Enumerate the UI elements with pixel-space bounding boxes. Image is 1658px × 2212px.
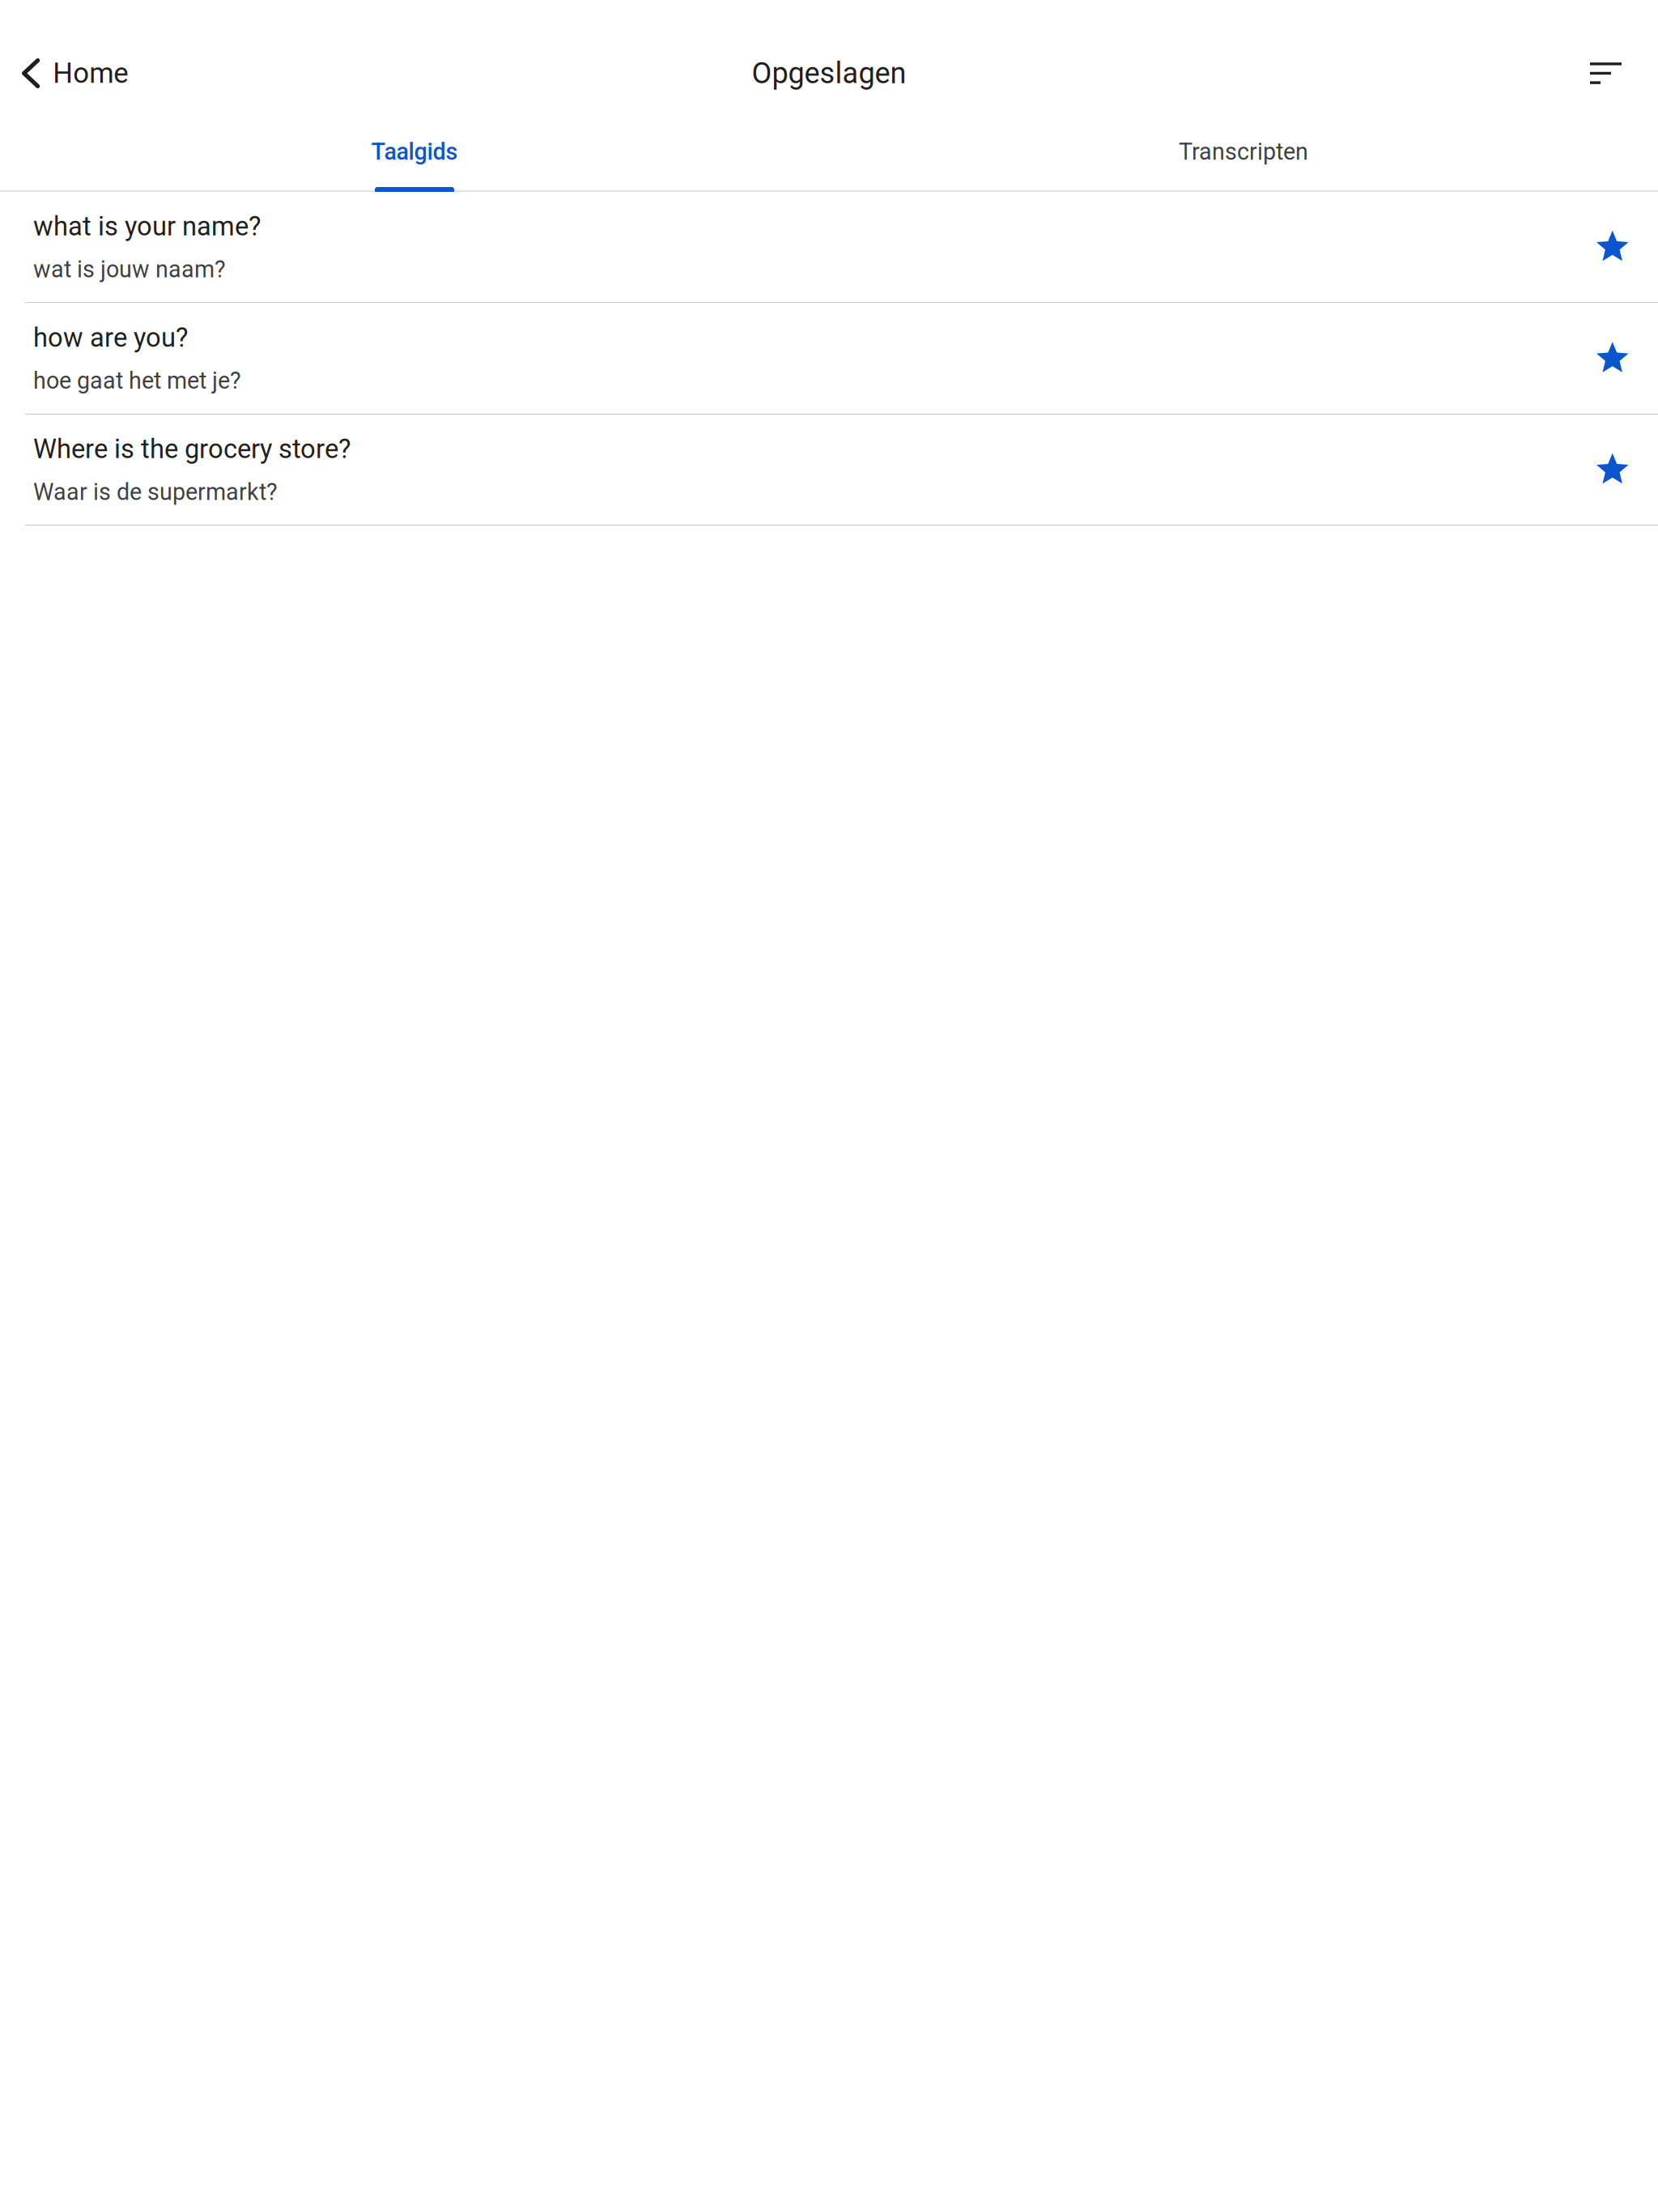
button[interactable]: Remove how are you? from saved — [1596, 303, 1628, 414]
staticText: Opgeslagen — [752, 56, 906, 90]
button[interactable]: Transcripten — [829, 113, 1658, 192]
staticText: what is your name? — [33, 211, 261, 242]
staticText: wat is jouw naam? — [33, 256, 226, 283]
staticText: Transcripten — [1179, 138, 1308, 165]
staticText: hoe gaat het met je? — [33, 367, 241, 394]
button[interactable]: Taalgids — [0, 113, 829, 192]
button[interactable]: Where is the grocery store? — [0, 415, 1658, 525]
button[interactable]: Remove what is your name? from saved — [1596, 192, 1628, 302]
button[interactable]: how are you? — [0, 303, 1658, 414]
staticText: Home — [53, 57, 128, 90]
button[interactable]: Remove Where is the grocery store? from … — [1596, 415, 1628, 525]
staticText: Waar is de supermarkt? — [33, 478, 278, 506]
button[interactable]: Home — [0, 33, 148, 114]
button[interactable]: what is your name? — [0, 192, 1658, 302]
staticText: Where is the grocery store? — [33, 434, 351, 465]
button[interactable]: Sort — [1569, 33, 1658, 114]
staticText: Taalgids — [371, 138, 458, 165]
staticText: how are you? — [33, 322, 188, 353]
